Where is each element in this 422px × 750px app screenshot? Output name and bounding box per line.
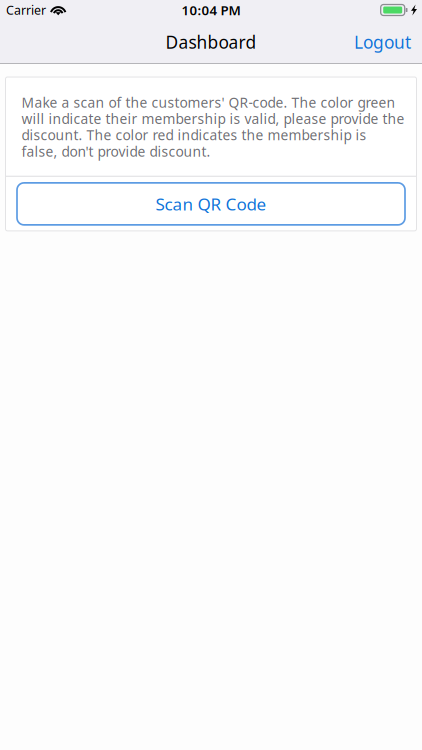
button[interactable]: Scan QR Code	[5, 177, 416, 231]
staticText: Dashboard	[165, 30, 256, 54]
staticText: Make a scan of the customers' QR-code. T…	[21, 93, 404, 161]
staticText: 10:04 PM	[181, 1, 240, 19]
staticText: Logout	[354, 30, 411, 54]
staticText: Scan QR Code	[155, 192, 266, 215]
button[interactable]: Logout	[346, 24, 419, 60]
staticText: Carrier	[6, 2, 46, 18]
